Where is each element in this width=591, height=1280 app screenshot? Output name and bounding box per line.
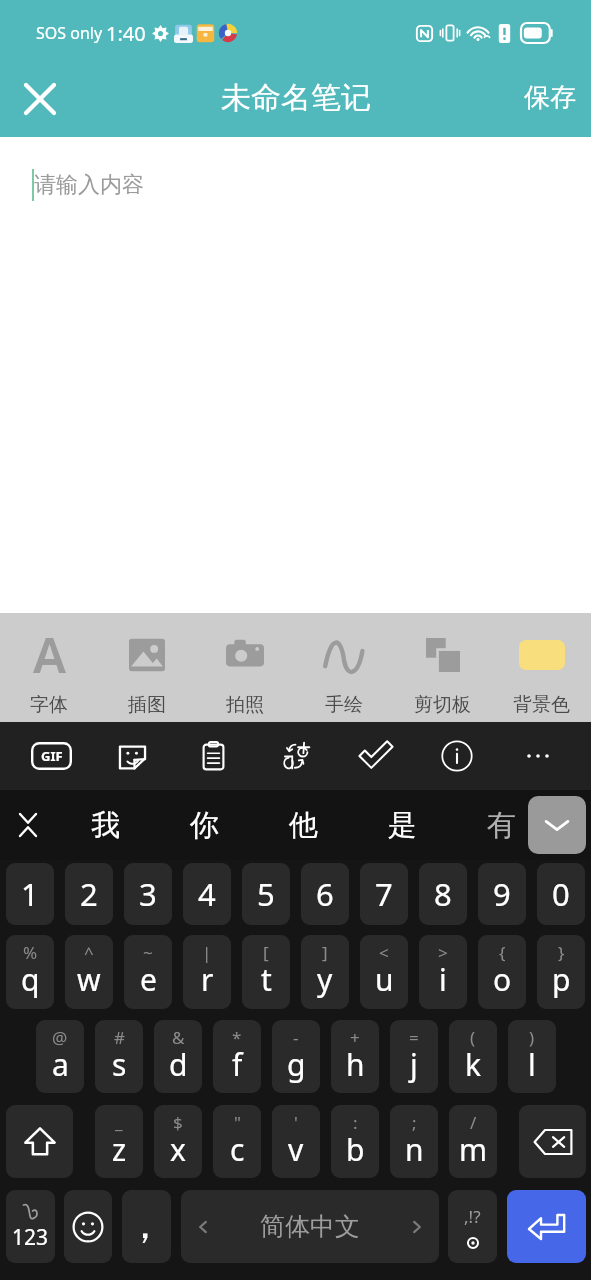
button[interactable]: Shift: [6, 1105, 73, 1178]
staticText: ': [294, 1111, 298, 1134]
button[interactable]: GIF: [24, 722, 78, 790]
button[interactable]: ': [272, 1105, 320, 1178]
staticText: 9: [493, 873, 511, 915]
button[interactable]: 背景色: [492, 613, 591, 722]
button[interactable]: ,!?: [448, 1190, 497, 1263]
button[interactable]: 我: [70, 790, 140, 860]
button[interactable]: Corrections: [349, 722, 403, 790]
staticText: 他: [289, 807, 318, 844]
staticText: 字体: [30, 693, 68, 717]
button[interactable]: }: [537, 935, 585, 1009]
button[interactable]: {: [478, 935, 526, 1009]
button[interactable]: ^: [65, 935, 113, 1009]
button[interactable]: :: [331, 1105, 379, 1178]
button[interactable]: 5: [242, 863, 290, 925]
button[interactable]: +: [331, 1020, 379, 1093]
staticText: ): [529, 1026, 535, 1049]
button[interactable]: @: [36, 1020, 84, 1093]
staticText: 3: [139, 873, 157, 915]
button[interactable]: &: [154, 1020, 202, 1093]
button[interactable]: 简体中文: [181, 1190, 439, 1263]
button[interactable]: Clipboard: [186, 722, 240, 790]
button[interactable]: Info: [430, 722, 484, 790]
staticText: 保存: [524, 81, 576, 114]
staticText: 123: [12, 1223, 49, 1252]
button[interactable]: More options: [511, 722, 565, 790]
staticText: z: [112, 1129, 127, 1170]
button[interactable]: Backspace: [519, 1105, 586, 1178]
staticText: t: [261, 959, 272, 1000]
button[interactable]: ": [213, 1105, 261, 1178]
staticText: -: [293, 1026, 299, 1049]
staticText: 7: [375, 873, 393, 915]
staticText: %: [23, 941, 38, 964]
button[interactable]: $: [154, 1105, 202, 1178]
button[interactable]: Expand suggestions: [528, 796, 586, 854]
button[interactable]: Translate: [268, 722, 322, 790]
staticText: 拍照: [226, 693, 264, 717]
staticText: y: [317, 959, 333, 1000]
button[interactable]: >: [419, 935, 467, 1009]
button[interactable]: #: [95, 1020, 143, 1093]
button[interactable]: (: [449, 1020, 497, 1093]
button[interactable]: 0: [537, 863, 585, 925]
button[interactable]: Hide suggestions: [0, 790, 56, 860]
button[interactable]: Close: [12, 66, 68, 137]
button[interactable]: Emoji: [64, 1190, 112, 1263]
button[interactable]: 他: [268, 790, 338, 860]
staticText: m: [459, 1129, 488, 1170]
button[interactable]: 拍照: [196, 613, 294, 722]
button[interactable]: -: [272, 1020, 320, 1093]
staticText: s: [112, 1044, 127, 1085]
button[interactable]: ;: [390, 1105, 438, 1178]
staticText: &: [172, 1026, 185, 1049]
staticText: o: [493, 959, 512, 1000]
button[interactable]: Enter: [507, 1190, 586, 1263]
button[interactable]: ，: [122, 1190, 171, 1263]
staticText: b: [346, 1129, 365, 1170]
button[interactable]: 123: [6, 1190, 55, 1263]
button[interactable]: 4: [183, 863, 231, 925]
staticText: >: [438, 941, 448, 964]
staticText: k: [465, 1044, 482, 1085]
staticText: a: [52, 1044, 69, 1085]
staticText: 背景色: [513, 693, 570, 717]
button[interactable]: |: [183, 935, 231, 1009]
button[interactable]: 2: [65, 863, 113, 925]
button[interactable]: 保存: [509, 66, 591, 137]
staticText: 请输入内容: [34, 171, 144, 199]
button[interactable]: 手绘: [294, 613, 393, 722]
staticText: =: [409, 1026, 419, 1049]
staticText: 手绘: [325, 693, 363, 717]
staticText: p: [552, 959, 571, 1000]
staticText: f: [232, 1044, 243, 1085]
button[interactable]: [: [242, 935, 290, 1009]
button[interactable]: 8: [419, 863, 467, 925]
button[interactable]: =: [390, 1020, 438, 1093]
button[interactable]: 字体: [0, 613, 98, 722]
button[interactable]: Stickers: [105, 722, 159, 790]
staticText: x: [170, 1129, 186, 1170]
button[interactable]: 插图: [98, 613, 196, 722]
button[interactable]: 剪切板: [393, 613, 492, 722]
button[interactable]: 7: [360, 863, 408, 925]
button[interactable]: /: [449, 1105, 497, 1178]
button[interactable]: 是: [367, 790, 437, 860]
button[interactable]: ): [508, 1020, 556, 1093]
button[interactable]: 3: [124, 863, 172, 925]
staticText: c: [230, 1129, 245, 1170]
button[interactable]: %: [6, 935, 54, 1009]
button[interactable]: 6: [301, 863, 349, 925]
staticText: 2: [80, 873, 98, 915]
button[interactable]: ~: [124, 935, 172, 1009]
button[interactable]: <: [360, 935, 408, 1009]
button[interactable]: _: [95, 1105, 143, 1178]
button[interactable]: 9: [478, 863, 526, 925]
button[interactable]: 有: [466, 790, 536, 860]
button[interactable]: 1: [6, 863, 54, 925]
button[interactable]: ]: [301, 935, 349, 1009]
staticText: _: [115, 1111, 123, 1134]
button[interactable]: 你: [169, 790, 239, 860]
button[interactable]: *: [213, 1020, 261, 1093]
staticText: 是: [388, 807, 417, 844]
